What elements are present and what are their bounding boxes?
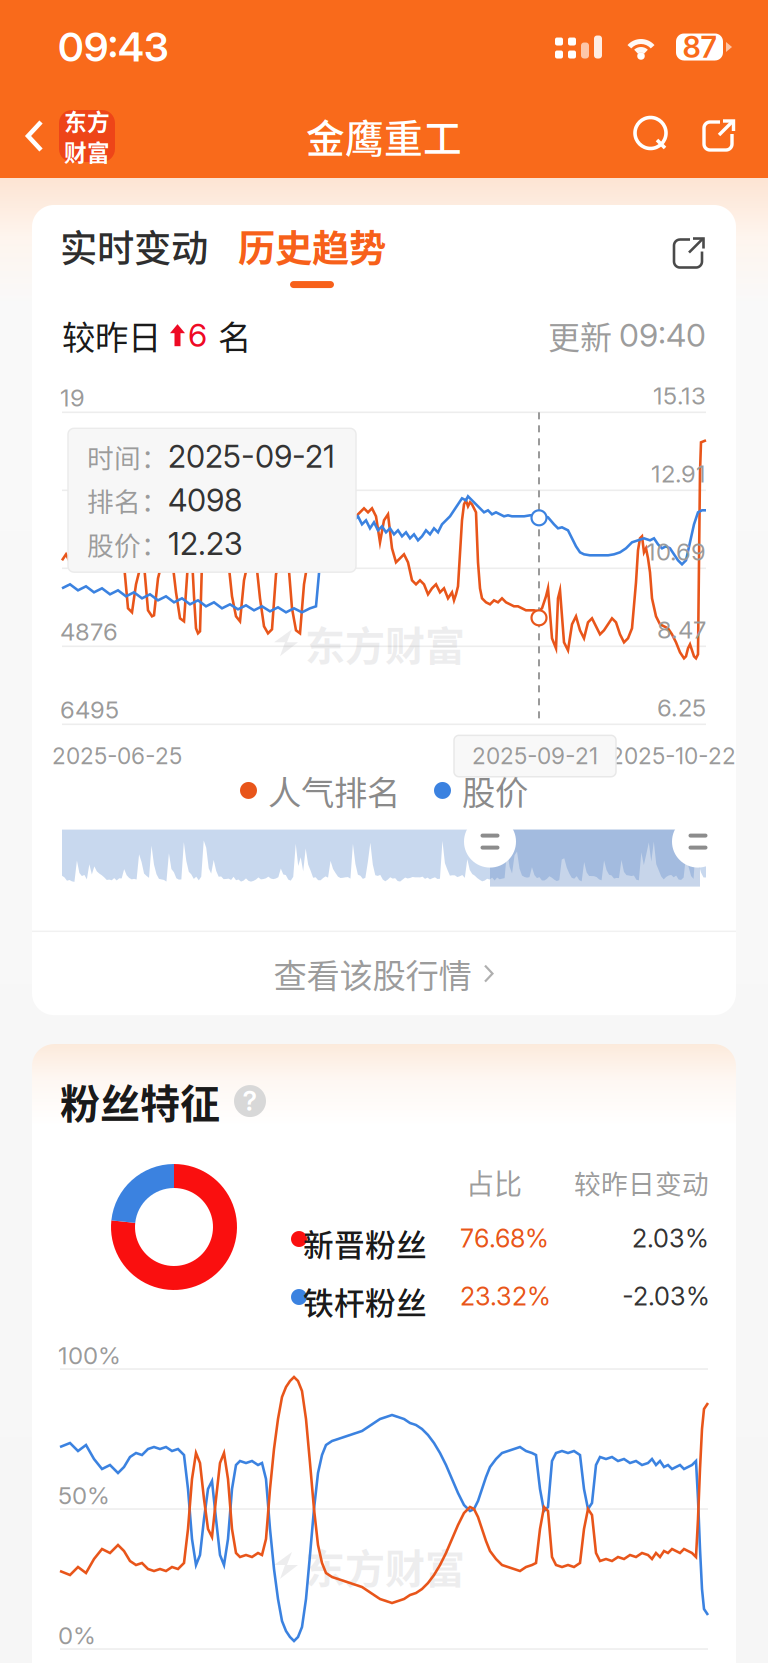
staticText: 4098: [168, 482, 242, 519]
staticText: 东方: [64, 104, 110, 137]
staticText: 2.03%: [632, 1223, 709, 1254]
staticText: 6.25: [657, 693, 706, 722]
staticText: 19: [60, 383, 85, 412]
button[interactable]: Help: [234, 1085, 266, 1117]
staticText: 财富: [64, 135, 110, 168]
staticText: 东方财富: [305, 614, 465, 672]
staticText: 6495: [60, 695, 119, 724]
staticText: 10.69: [646, 537, 706, 566]
button[interactable]: Back: [0, 94, 125, 178]
staticText: 8.47: [657, 615, 706, 644]
staticText: 100%: [58, 1341, 121, 1370]
staticText: 新晋粉丝: [303, 1221, 427, 1265]
button[interactable]: 查看该股行情: [32, 932, 736, 1015]
staticText: 排名：: [87, 481, 168, 519]
staticText: 09:40: [619, 316, 706, 354]
staticText: 时间：: [87, 437, 168, 476]
staticText: 2025-10-22: [610, 742, 736, 770]
staticText: 76.68%: [460, 1223, 549, 1254]
staticText: 12.23: [168, 525, 243, 562]
staticText: 0%: [58, 1621, 96, 1650]
staticText: 较昨日: [62, 311, 161, 359]
staticText: 铁杆粉丝: [303, 1279, 427, 1323]
staticText: 50%: [58, 1481, 110, 1510]
button[interactable]: 历史趋势: [238, 219, 386, 288]
staticText: 2025-06-25: [52, 742, 182, 770]
staticText: 金鹰重工: [306, 108, 462, 164]
staticText: 历史趋势: [238, 219, 386, 273]
staticText: 占比: [466, 1162, 522, 1202]
staticText: 09:43: [58, 23, 169, 71]
staticText: 较昨日变动: [574, 1163, 709, 1202]
staticText: 4876: [60, 617, 118, 646]
staticText: 实时变动: [60, 219, 208, 273]
staticText: 23.32%: [460, 1281, 551, 1312]
staticText: 12.91: [651, 459, 706, 488]
staticText: 名: [218, 311, 251, 359]
staticText: 粉丝特征: [60, 1072, 220, 1130]
button[interactable]: Share: [690, 107, 748, 165]
button[interactable]: 实时变动: [60, 219, 208, 288]
staticText: ?: [242, 1085, 257, 1117]
staticText: 查看该股行情: [273, 949, 471, 998]
staticText: 东方财富: [305, 1537, 465, 1595]
staticText: 15.13: [653, 381, 706, 410]
button[interactable]: Open in full screen: [664, 228, 714, 278]
staticText: 87: [682, 29, 716, 65]
staticText: 更新: [548, 312, 612, 358]
staticText: 2025-09-21: [472, 742, 598, 770]
staticText: -2.03%: [622, 1281, 710, 1312]
staticText: 6: [188, 316, 207, 354]
staticText: 股价：: [87, 525, 168, 563]
staticText: 股价: [462, 766, 528, 815]
button[interactable]: Search: [624, 107, 682, 165]
staticText: 2025-09-21: [168, 438, 335, 475]
staticText: 人气排名: [268, 766, 400, 815]
